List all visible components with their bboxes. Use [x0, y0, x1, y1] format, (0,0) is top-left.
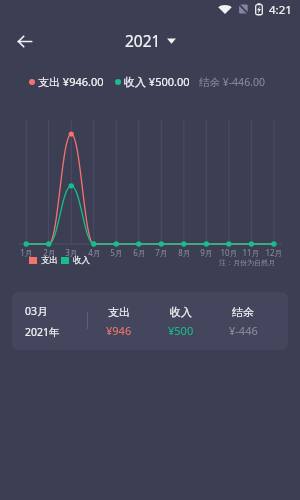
staticText: 6月 [133, 247, 146, 258]
staticText: 结余 [232, 305, 254, 319]
staticText: 2月 [43, 247, 56, 258]
staticText: 11月 [242, 247, 260, 258]
staticText: 结余 ¥-446.00 [199, 75, 265, 89]
staticText: 5月 [110, 247, 123, 258]
staticText: 1月 [20, 247, 33, 258]
staticText: 支出 ¥946.00 [38, 74, 104, 89]
staticText: ¥-446 [229, 323, 258, 338]
staticText: 2021 [125, 30, 161, 51]
staticText: 4:21 [269, 2, 292, 18]
button[interactable]: Back [9, 26, 39, 56]
staticText: 12月 [265, 247, 283, 258]
staticText: 10月 [220, 247, 238, 258]
staticText: 2021年 [25, 325, 60, 339]
button[interactable]: 2021 [125, 30, 176, 51]
staticText: 收入 [170, 305, 192, 319]
staticText: ¥946 [106, 323, 132, 338]
staticText: 收入 [73, 255, 90, 266]
staticText: 4月 [88, 247, 101, 258]
staticText: 9月 [200, 247, 213, 258]
staticText: ¥500 [168, 323, 194, 338]
staticText: 支出 [41, 255, 58, 266]
staticText: 支出 [108, 305, 130, 319]
staticText: 注：月份为自然月 [219, 258, 275, 267]
staticText: 7月 [155, 247, 168, 258]
staticText: 03月 [25, 304, 48, 318]
staticText: 收入 ¥500.00 [124, 74, 190, 89]
staticText: 8月 [178, 247, 191, 258]
button[interactable]: 03月 [12, 292, 288, 350]
staticText: 3月 [65, 247, 78, 258]
